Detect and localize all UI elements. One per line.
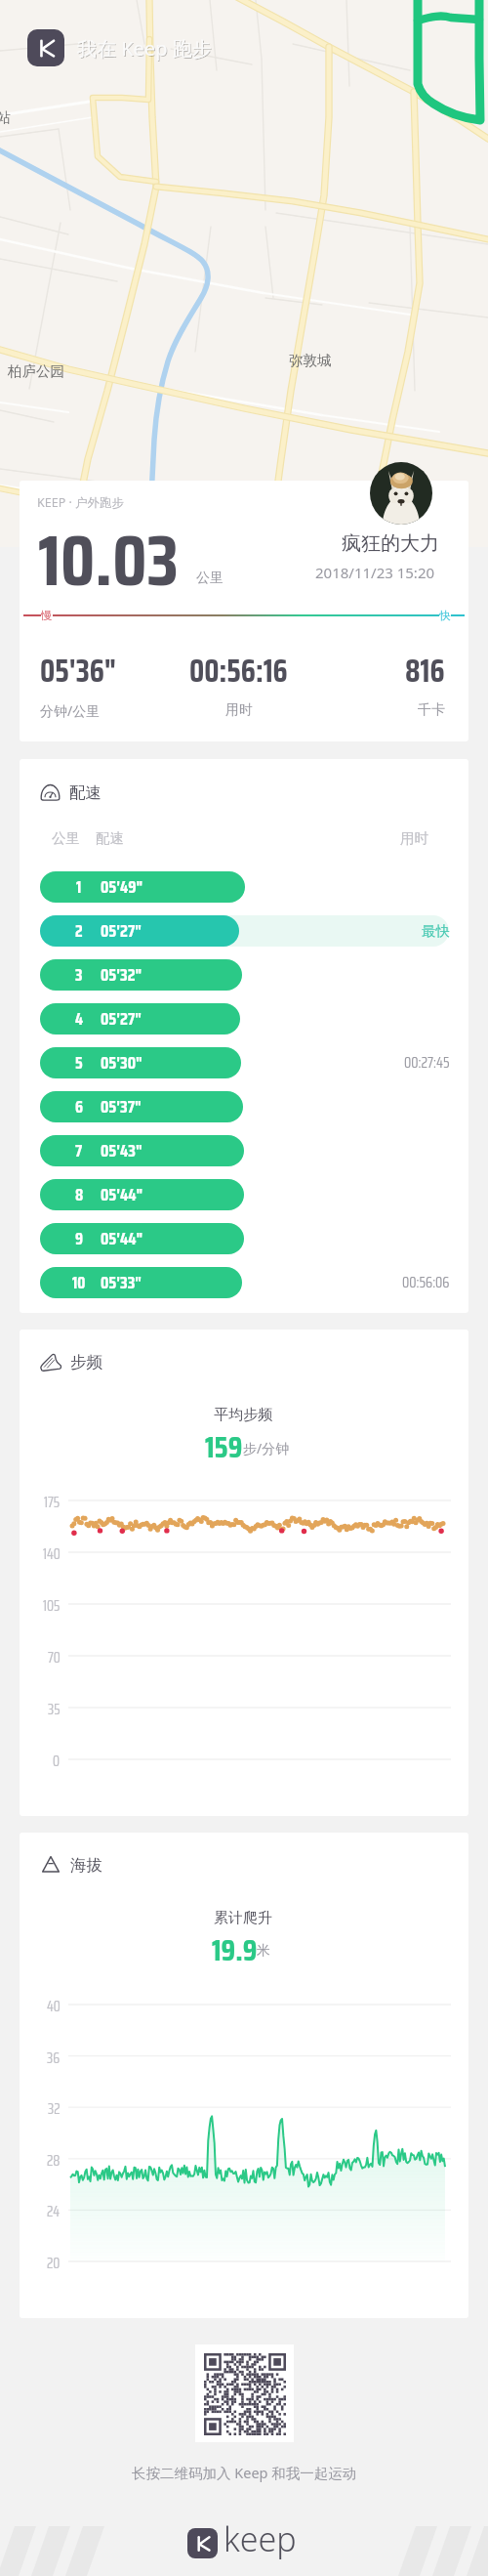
button[interactable]: 5 [20, 1047, 468, 1078]
staticText: 70 [48, 1647, 61, 1669]
button[interactable]: QR code [195, 2344, 294, 2442]
staticText: 3 [75, 962, 83, 989]
button[interactable]: User avatar [370, 462, 432, 525]
staticText: 5 [75, 1050, 83, 1077]
button[interactable]: 1 [20, 871, 468, 903]
staticText: 05'30" [101, 1049, 142, 1077]
button[interactable]: 9 [20, 1223, 468, 1254]
staticText: 我在 Keep 跑步 [78, 36, 213, 63]
staticText: 7 [75, 1138, 83, 1164]
staticText: 公里 [196, 570, 224, 587]
staticText: 长按二维码加入 Keep 和我一起运动 [132, 2463, 357, 2482]
staticText: 175 [44, 1492, 61, 1514]
staticText: 9 [75, 1226, 84, 1252]
staticText: 816 [405, 647, 445, 696]
staticText: 10 [72, 1270, 86, 1296]
staticText: 105 [43, 1595, 61, 1618]
staticText: 05'44" [101, 1225, 143, 1252]
staticText: 4 [75, 1006, 83, 1033]
staticText: 36 [47, 2048, 61, 2070]
button[interactable]: 配速 [40, 782, 102, 803]
staticText: 05'36" [40, 647, 117, 696]
staticText: 00:27:45 [404, 1051, 450, 1075]
staticText: 6 [75, 1094, 84, 1120]
staticText: 站 [0, 109, 11, 127]
staticText: 千卡 [418, 701, 445, 719]
staticText: 24 [47, 2201, 61, 2223]
staticText: 公里 [52, 829, 80, 847]
button[interactable]: 7 [20, 1135, 468, 1166]
staticText: 配速 [69, 782, 102, 803]
staticText: 柏庐公园 [8, 362, 64, 380]
staticText: KEEP · 户外跑步 [37, 494, 125, 511]
staticText: 00:56:06 [402, 1271, 450, 1294]
staticText: 00:56:16 [189, 647, 288, 696]
button[interactable]: 我在 Keep 跑步 [27, 29, 212, 66]
button[interactable]: 3 [20, 959, 468, 991]
staticText: 159 [205, 1423, 243, 1471]
staticText: 05'49" [101, 873, 143, 901]
staticText: 用时 [400, 829, 428, 847]
staticText: 1 [76, 874, 82, 901]
staticText: 20 [47, 2253, 61, 2275]
button[interactable]: 6 [20, 1091, 468, 1122]
staticText: keep [224, 2516, 297, 2561]
button[interactable]: 2 [20, 915, 468, 947]
button[interactable] [187, 2528, 218, 2558]
staticText: 10.03 [38, 503, 179, 616]
staticText: 配速 [96, 829, 124, 847]
button[interactable]: 10 [20, 1267, 468, 1298]
staticText: 140 [43, 1543, 61, 1566]
staticText: 28 [47, 2150, 61, 2173]
staticText: 40 [47, 1996, 61, 2018]
staticText: 快 [439, 609, 451, 622]
staticText: 用时 [225, 701, 253, 719]
staticText: 平均步频 [214, 1406, 272, 1424]
staticText: 2018/11/23 15:20 [315, 563, 435, 582]
staticText: 05'27" [101, 1005, 142, 1033]
staticText: 步/分钟 [243, 1439, 290, 1457]
staticText: 疯狂的大力 [342, 531, 439, 556]
staticText: 弥敦城 [289, 352, 332, 369]
staticText: 0 [53, 1751, 61, 1773]
staticText: 05'32" [101, 961, 142, 989]
staticText: 分钟/公里 [40, 701, 101, 720]
staticText: 35 [48, 1699, 61, 1721]
staticText: 最快 [422, 922, 450, 940]
staticText: 19.9 [212, 1926, 258, 1974]
staticText: 慢 [41, 609, 53, 622]
button[interactable]: 海拔 [40, 1854, 102, 1876]
staticText: 我在 Keep 跑步 [77, 35, 212, 62]
staticText: 累计爬升 [214, 1909, 272, 1927]
staticText: 05'44" [101, 1181, 143, 1208]
button[interactable]: 4 [20, 1003, 468, 1035]
staticText: 2 [75, 918, 83, 945]
staticText: 步频 [70, 1352, 102, 1372]
staticText: 米 [257, 1942, 270, 1960]
button[interactable]: 8 [20, 1179, 468, 1210]
staticText: 32 [48, 2098, 61, 2121]
staticText: 海拔 [70, 1855, 102, 1876]
staticText: 05'33" [101, 1269, 142, 1296]
staticText: 05'37" [101, 1093, 142, 1120]
staticText: 05'43" [101, 1137, 142, 1164]
staticText: 8 [75, 1182, 84, 1208]
staticText: 05'27" [101, 917, 142, 945]
button[interactable]: 步频 [40, 1351, 102, 1372]
